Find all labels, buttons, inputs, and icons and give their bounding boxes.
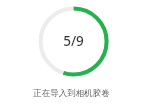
staticText: 5/9	[63, 32, 84, 50]
staticText: 正在导入到相机胶卷	[33, 88, 110, 99]
